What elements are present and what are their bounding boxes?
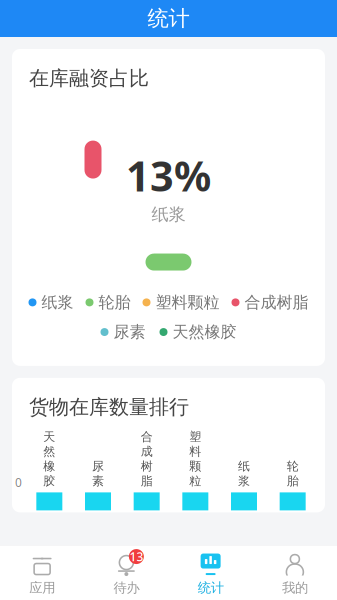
staticText: 胶 [43,474,55,488]
staticText: 尿素 [113,322,145,342]
staticText: 纸 [238,459,250,474]
button[interactable]: 我的 [253,546,337,600]
staticText: 颗 [189,459,201,474]
staticText: 然 [43,444,55,459]
staticText: 天然橡胶 [172,322,236,342]
staticText: 尿 [92,459,104,474]
staticText: 胎 [287,474,299,488]
staticText: 塑料颗粒 [155,293,219,312]
button[interactable]: 13 [84,546,168,600]
staticText: 橡 [43,459,55,474]
staticText: 在库融资占比 [29,66,149,91]
staticText: 纸浆 [41,293,73,312]
staticText: 轮 [287,459,299,474]
staticText: 树 [141,459,153,474]
staticText: 13 [129,549,143,564]
staticText: 浆 [238,474,250,488]
button[interactable]: 统计 [168,546,253,600]
staticText: 货物在库数量排行 [29,395,189,419]
staticText: 合成树脂 [244,293,308,312]
staticText: 合 [141,429,153,444]
staticText: 纸浆 [151,204,185,225]
staticText: 13% [126,148,211,203]
staticText: 0 [15,474,22,490]
staticText: 素 [92,474,104,488]
staticText: 待办 [113,580,139,596]
staticText: 粒 [189,474,201,488]
staticText: 塑 [189,429,201,444]
button[interactable]: 应用 [0,546,84,600]
staticText: 脂 [141,474,153,488]
staticText: 我的 [282,580,308,596]
staticText: 统计 [198,580,224,596]
staticText: 统计 [147,5,189,32]
staticText: 应用 [29,580,55,596]
staticText: 成 [141,444,153,459]
staticText: 料 [189,444,201,459]
staticText: 轮胎 [98,293,130,312]
staticText: 天 [43,429,55,444]
